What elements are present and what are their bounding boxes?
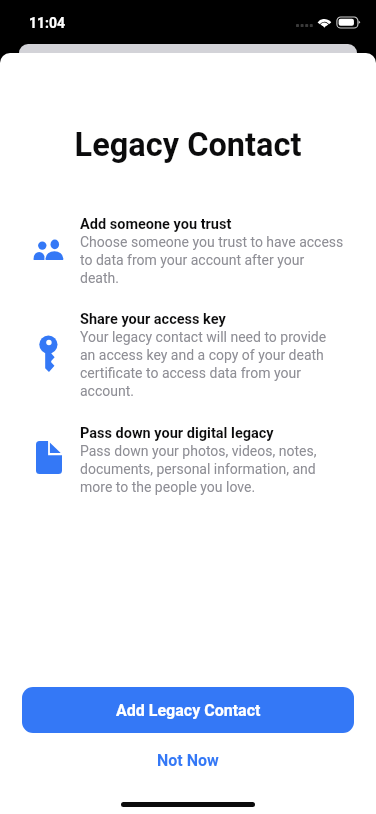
staticText: 11:04 bbox=[29, 15, 66, 31]
staticText: Pass down your digital legacy bbox=[80, 424, 274, 442]
other: Document bbox=[36, 441, 62, 474]
staticText: Add someone you trust bbox=[80, 215, 232, 233]
staticText: Pass down your photos, videos, notes, do… bbox=[80, 442, 344, 496]
staticText: Not Now bbox=[157, 751, 219, 770]
staticText: Legacy Contact bbox=[0, 126, 376, 164]
button[interactable]: Not Now bbox=[0, 740, 376, 780]
button[interactable]: Add Legacy Contact bbox=[22, 687, 354, 733]
staticText: Choose someone you trust to have access … bbox=[80, 233, 344, 287]
staticText: Share your access key bbox=[80, 310, 226, 328]
staticText: Your legacy contact will need to provide… bbox=[80, 328, 344, 400]
other: People bbox=[33, 239, 65, 260]
other: Key bbox=[39, 336, 58, 372]
staticText: Add Legacy Contact bbox=[116, 701, 261, 720]
